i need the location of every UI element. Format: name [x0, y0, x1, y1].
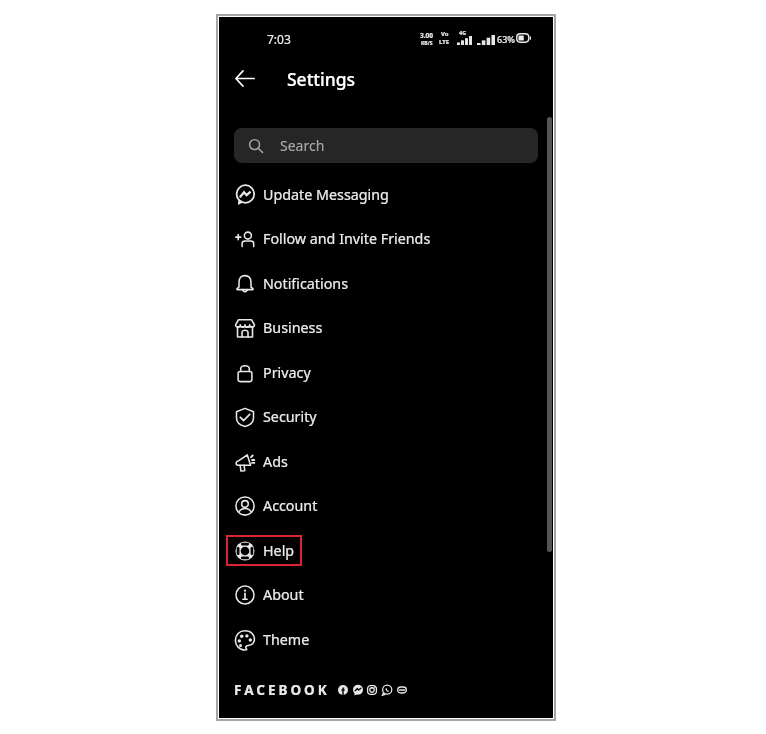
staticText: 7:03 [267, 31, 291, 47]
staticText: Ads [263, 452, 288, 471]
button[interactable]: Security [226, 399, 537, 435]
button[interactable]: Update Messaging [226, 177, 537, 213]
button[interactable]: Messenger [353, 685, 363, 695]
staticText: KB/S [421, 40, 433, 47]
staticText: Theme [263, 630, 310, 649]
button[interactable]: Privacy [226, 355, 537, 391]
staticText: 3.00 [420, 31, 433, 40]
button[interactable]: Oculus [397, 685, 407, 695]
staticText: About [263, 585, 304, 604]
button[interactable]: Theme [226, 622, 537, 658]
staticText: 63% [497, 33, 515, 45]
button[interactable]: Account [226, 488, 537, 524]
button[interactable]: About [226, 577, 537, 613]
staticText: Account [263, 496, 318, 515]
staticText: FACEBOOK [234, 681, 330, 699]
button[interactable]: Notifications [226, 266, 537, 302]
staticText: Search [280, 136, 325, 155]
button[interactable]: Ads [226, 444, 537, 480]
button[interactable]: Instagram [367, 685, 377, 695]
staticText: Follow and Invite Friends [263, 229, 431, 248]
button[interactable]: Search [234, 128, 538, 163]
staticText: Settings [287, 67, 356, 91]
button[interactable]: Follow and Invite Friends [226, 221, 537, 257]
staticText: Vo [441, 30, 449, 38]
staticText: Business [263, 318, 323, 337]
staticText: Privacy [263, 363, 311, 382]
staticText: 4G [459, 29, 467, 36]
button[interactable]: Help [226, 533, 537, 569]
button[interactable]: WhatsApp [382, 685, 392, 695]
button[interactable]: Back [230, 64, 259, 93]
button[interactable]: Facebook [338, 685, 348, 695]
staticText: Update Messaging [263, 185, 389, 204]
staticText: Notifications [263, 274, 349, 293]
staticText: Help [263, 541, 295, 560]
button[interactable]: Business [226, 310, 537, 346]
staticText: LTE [439, 38, 450, 46]
staticText: Security [263, 407, 317, 426]
